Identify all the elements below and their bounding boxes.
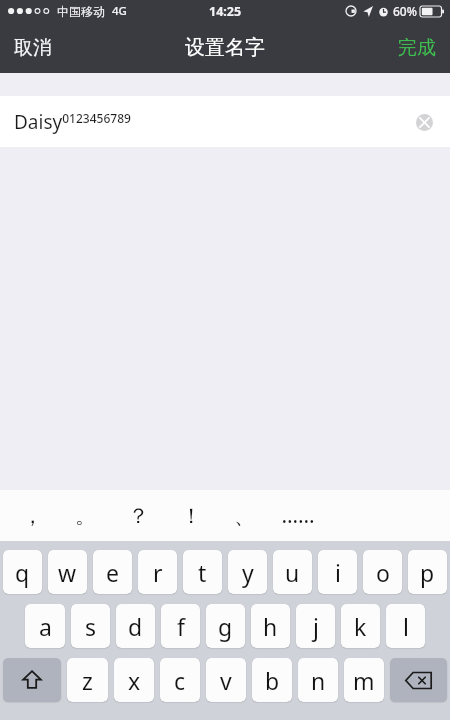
button[interactable]: m — [344, 658, 384, 702]
staticText: ， — [22, 503, 43, 529]
button[interactable]: ？ — [112, 490, 165, 541]
staticText: x — [128, 665, 141, 696]
staticText: k — [354, 611, 367, 642]
staticText: …… — [281, 501, 315, 530]
button[interactable]: Clear text — [412, 110, 436, 134]
button[interactable]: …… — [271, 490, 324, 541]
button[interactable]: z — [67, 658, 108, 702]
staticText: r — [153, 557, 163, 588]
button[interactable]: s — [71, 604, 110, 648]
staticText: c — [174, 665, 186, 696]
button[interactable]: w — [48, 550, 87, 594]
staticText: b — [265, 665, 280, 696]
button[interactable]: d — [116, 604, 155, 648]
button[interactable]: Shift — [3, 658, 61, 702]
button[interactable]: j — [296, 604, 335, 648]
button[interactable]: x — [114, 658, 154, 702]
staticText: i — [335, 557, 341, 588]
button[interactable]: i — [318, 550, 357, 594]
staticText: w — [58, 557, 77, 588]
button[interactable]: 完成 — [384, 22, 450, 73]
staticText: g — [218, 611, 233, 642]
button[interactable]: 、 — [218, 490, 271, 541]
staticText: 14:25 — [209, 3, 242, 20]
button[interactable]: 。 — [59, 490, 112, 541]
staticText: n — [311, 665, 326, 696]
button[interactable]: Backspace — [390, 658, 447, 702]
staticText: l — [403, 611, 409, 642]
staticText: t — [198, 557, 207, 588]
button[interactable]: l — [386, 604, 425, 648]
staticText: 完成 — [398, 36, 436, 60]
staticText: f — [177, 611, 185, 642]
button[interactable]: 取消 — [0, 22, 66, 73]
staticText: 。 — [75, 503, 96, 529]
button[interactable]: h — [251, 604, 290, 648]
button[interactable]: g — [206, 604, 245, 648]
staticText: Daisy0123456789 — [14, 109, 131, 135]
staticText: 60% — [393, 3, 417, 19]
staticText: u — [285, 557, 300, 588]
staticText: e — [106, 557, 119, 588]
staticText: z — [82, 665, 93, 696]
staticText: 中国移动 — [57, 4, 105, 19]
staticText: d — [128, 611, 143, 642]
staticText: o — [376, 557, 390, 588]
staticText: y — [242, 557, 254, 588]
button[interactable]: q — [3, 550, 42, 594]
button[interactable]: b — [252, 658, 292, 702]
staticText: 设置名字 — [185, 35, 265, 60]
button[interactable]: c — [160, 658, 200, 702]
staticText: q — [15, 557, 30, 588]
button[interactable]: r — [138, 550, 177, 594]
staticText: 4G — [112, 3, 127, 19]
staticText: h — [263, 611, 278, 642]
staticText: ！ — [181, 503, 202, 529]
button[interactable]: o — [363, 550, 402, 594]
button[interactable]: f — [161, 604, 200, 648]
staticText: a — [39, 611, 52, 642]
staticText: m — [353, 665, 375, 696]
button[interactable]: p — [408, 550, 447, 594]
button[interactable]: ！ — [165, 490, 218, 541]
staticText: 、 — [234, 503, 255, 529]
staticText: 取消 — [14, 36, 52, 60]
button[interactable]: t — [183, 550, 222, 594]
button[interactable]: k — [341, 604, 380, 648]
button[interactable]: v — [206, 658, 246, 702]
staticText: j — [313, 611, 319, 642]
button[interactable]: e — [93, 550, 132, 594]
staticText: ？ — [128, 503, 149, 529]
button[interactable]: ， — [6, 490, 59, 541]
button[interactable]: y — [228, 550, 267, 594]
staticText: p — [420, 557, 435, 588]
staticText: s — [85, 611, 97, 642]
button[interactable]: n — [298, 658, 338, 702]
button[interactable]: a — [25, 604, 65, 648]
staticText: v — [220, 665, 232, 696]
button[interactable]: u — [273, 550, 312, 594]
